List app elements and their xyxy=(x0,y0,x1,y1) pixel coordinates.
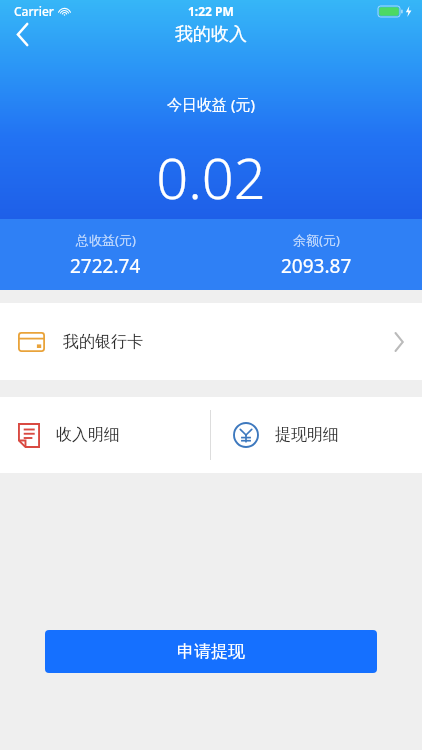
staticText: 提现明细 xyxy=(275,425,339,445)
staticText: 1:22 PM xyxy=(188,3,234,19)
staticText: 0.02 xyxy=(156,139,266,215)
staticText: 我的银行卡 xyxy=(63,332,143,352)
staticText: 收入明细 xyxy=(56,425,120,445)
staticText: 2722.74 xyxy=(70,253,141,279)
staticText: 总收益(元) xyxy=(76,231,136,249)
staticText: 今日收益 (元) xyxy=(167,94,255,114)
staticText: 我的收入 xyxy=(175,23,247,46)
button[interactable]: 收入明细 xyxy=(0,397,210,473)
staticText: Carrier xyxy=(14,3,54,19)
staticText: 申请提现 xyxy=(177,641,245,662)
staticText: 2093.87 xyxy=(281,253,352,279)
staticText: 余额(元) xyxy=(293,231,340,249)
button[interactable]: 申请提现 xyxy=(45,630,377,673)
button[interactable]: 我的银行卡 xyxy=(0,303,422,380)
button[interactable]: Back xyxy=(0,22,46,46)
button[interactable]: 提现明细 xyxy=(211,397,422,473)
